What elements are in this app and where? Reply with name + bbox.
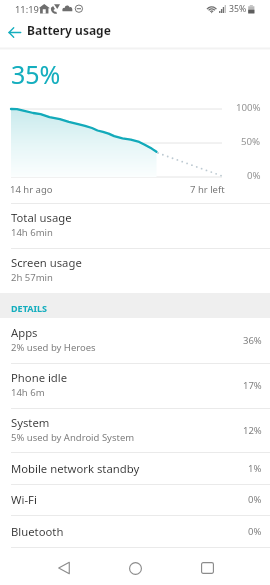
button[interactable]: Total usage bbox=[0, 203, 270, 248]
button[interactable]: Phone idle bbox=[0, 363, 270, 408]
button[interactable]: Screen usage bbox=[0, 248, 270, 293]
button[interactable]: Wi-Fi bbox=[0, 484, 270, 515]
staticText: Wi-Fi bbox=[11, 492, 248, 507]
staticText: 7 hr left bbox=[190, 183, 225, 196]
staticText: 11:19 bbox=[15, 3, 39, 16]
staticText: 36% bbox=[243, 334, 262, 347]
button[interactable]: Bluetooth bbox=[0, 515, 270, 547]
staticText: 0% bbox=[247, 169, 261, 182]
button[interactable]: Recent apps bbox=[188, 551, 227, 585]
staticText: Total usage bbox=[11, 210, 72, 225]
button[interactable]: Back bbox=[44, 551, 83, 585]
button[interactable]: System bbox=[0, 408, 270, 452]
staticText: 14 hr ago bbox=[10, 183, 53, 196]
staticText: 50% bbox=[241, 135, 261, 148]
button[interactable]: Mobile network standby bbox=[0, 452, 270, 484]
staticText: 2% used by Heroes bbox=[11, 341, 96, 354]
staticText: 17% bbox=[243, 379, 262, 392]
staticText: 14h 6m bbox=[11, 386, 45, 399]
button[interactable]: Home bbox=[116, 551, 155, 585]
staticText: Bluetooth bbox=[11, 524, 248, 539]
staticText: 0% bbox=[248, 493, 262, 506]
staticText: 35% bbox=[229, 3, 247, 15]
button[interactable]: Back bbox=[3, 21, 26, 44]
button[interactable]: Apps bbox=[0, 318, 270, 363]
staticText: Battery usage bbox=[27, 22, 111, 38]
staticText: 5% used by Android System bbox=[11, 431, 135, 444]
staticText: Screen usage bbox=[11, 255, 82, 270]
staticText: 100% bbox=[236, 101, 261, 114]
staticText: 12% bbox=[243, 424, 262, 437]
staticText: System bbox=[11, 415, 50, 430]
staticText: Mobile network standby bbox=[11, 461, 248, 476]
staticText: 0% bbox=[248, 525, 262, 538]
staticText: 1% bbox=[248, 462, 262, 475]
staticText: 14h 6min bbox=[11, 226, 53, 239]
staticText: DETAILS bbox=[11, 302, 47, 314]
staticText: 2h 57min bbox=[11, 271, 53, 284]
staticText: Apps bbox=[11, 325, 38, 340]
staticText: 35% bbox=[11, 57, 61, 91]
staticText: Phone idle bbox=[11, 370, 68, 385]
